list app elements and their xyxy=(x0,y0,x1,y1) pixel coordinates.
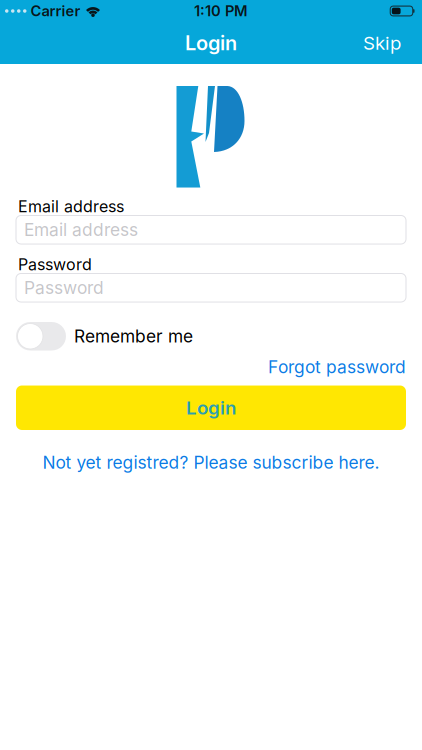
staticText: Email address xyxy=(24,219,138,240)
button[interactable]: Skip xyxy=(363,32,422,54)
button[interactable]: Password xyxy=(16,273,406,302)
staticText: Login xyxy=(185,31,237,55)
button[interactable]: Login xyxy=(16,385,406,430)
staticText: Forgot password xyxy=(268,357,406,377)
staticText: Login xyxy=(186,397,236,419)
staticText: Password xyxy=(24,277,104,298)
staticText: Not yet registred? Please subscribe here… xyxy=(42,452,379,473)
staticText: Remember me xyxy=(74,326,193,346)
button[interactable]: Not yet registred? Please subscribe here… xyxy=(42,452,379,473)
staticText: Email address xyxy=(18,197,124,216)
button[interactable]: Remember me xyxy=(16,322,406,350)
button[interactable]: Email address xyxy=(16,215,406,244)
staticText: Skip xyxy=(363,32,401,54)
button[interactable]: Forgot password xyxy=(268,357,406,377)
staticText: Carrier xyxy=(30,2,80,20)
staticText: Password xyxy=(18,255,92,274)
staticText: 1:10 PM xyxy=(194,2,248,20)
